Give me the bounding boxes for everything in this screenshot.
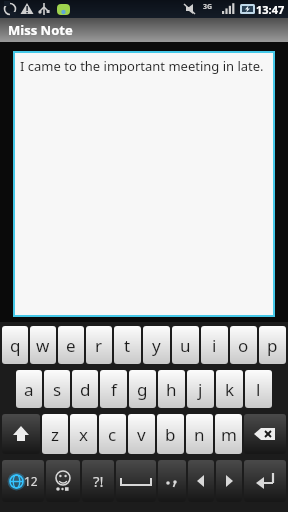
staticText: c [108,423,117,446]
staticText: s [53,378,62,401]
button[interactable]: s [44,370,70,408]
button[interactable]: Cursor left [188,460,214,502]
button[interactable]: q [2,326,28,364]
staticText: b [165,423,176,446]
button[interactable]: n [186,414,213,454]
staticText: Miss Note [8,21,73,39]
staticText: t [124,334,131,357]
staticText: r [95,334,103,357]
staticText: v [137,423,146,446]
button[interactable]: x [70,414,97,454]
button[interactable]: w [30,326,56,364]
button[interactable]: i [201,326,228,364]
staticText: 3G [203,2,213,12]
staticText: m [221,423,237,446]
button[interactable]: h [158,370,185,408]
staticText: l [256,378,261,401]
staticText: ?! [93,471,104,491]
staticText: u [180,334,191,357]
button[interactable]: Period comma [158,460,186,502]
button[interactable]: Input method [2,460,44,502]
staticText: f [111,378,117,401]
button[interactable]: m [215,414,242,454]
staticText: k [225,378,235,401]
button[interactable]: I came to the important meeting in late. [15,53,273,315]
button[interactable]: c [99,414,126,454]
staticText: w [36,334,50,357]
button[interactable]: Shift [2,414,40,454]
staticText: e [66,334,76,357]
button[interactable]: v [128,414,155,454]
button[interactable]: k [216,370,243,408]
button[interactable]: e [58,326,84,364]
button[interactable]: g [129,370,156,408]
staticText: q [10,334,21,357]
staticText: x [79,423,88,446]
staticText: 12 [24,473,38,489]
staticText: a [24,378,34,401]
button[interactable]: j [187,370,214,408]
staticText: y [152,334,161,357]
staticText: I came to the important meeting in late. [20,57,264,75]
button[interactable]: Emoji [46,460,80,502]
button[interactable]: Backspace [244,414,286,454]
button[interactable]: z [42,414,68,454]
staticText: i [212,334,217,357]
button[interactable]: l [245,370,272,408]
staticText: g [137,378,148,401]
button[interactable]: r [86,326,112,364]
staticText: d [80,378,91,401]
button[interactable]: u [172,326,199,364]
button[interactable]: o [230,326,257,364]
staticText: z [51,423,59,446]
staticText: 13:47 [256,2,285,17]
button[interactable]: p [259,326,286,364]
button[interactable]: a [16,370,42,408]
staticText: h [166,378,177,401]
button[interactable]: y [143,326,170,364]
staticText: p [267,334,278,357]
button[interactable]: ?! [82,460,114,502]
staticText: j [198,378,203,401]
button[interactable]: f [100,370,127,408]
button[interactable]: b [157,414,184,454]
staticText: n [194,423,205,446]
button[interactable]: t [114,326,141,364]
staticText: o [238,334,249,357]
button[interactable]: d [72,370,98,408]
button[interactable]: Enter [244,460,286,502]
button[interactable]: Cursor right [216,460,242,502]
button[interactable]: Space [116,460,156,502]
